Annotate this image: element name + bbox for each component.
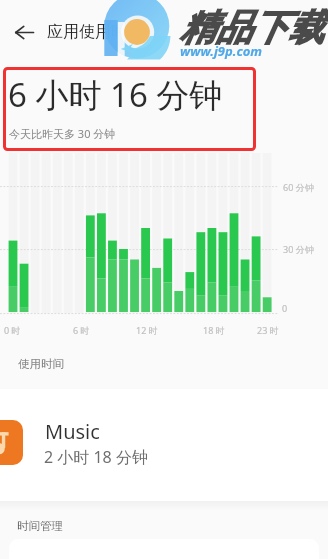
staticText: 应用使用时间: [47, 22, 143, 42]
staticText: 时间管理: [17, 519, 63, 533]
staticText: 2 小时 18 分钟: [44, 446, 148, 468]
staticText: 23 时: [257, 324, 279, 336]
staticText: 18 时: [203, 324, 225, 336]
button[interactable]: Music: [0, 389, 328, 501]
staticText: 今天比昨天多 30 分钟: [9, 126, 116, 141]
staticText: 0 时: [4, 324, 21, 336]
staticText: 12 时: [136, 324, 158, 336]
staticText: www.j9p.com: [180, 42, 263, 60]
staticText: 精品下载: [180, 5, 324, 50]
staticText: 6 时: [73, 324, 90, 336]
staticText: 6 小时 16 分钟: [8, 72, 223, 117]
staticText: 30 分钟: [283, 243, 314, 255]
staticText: 0: [282, 302, 288, 314]
staticText: 60 分钟: [283, 181, 314, 193]
staticText: 使用时间: [18, 357, 64, 371]
button[interactable]: Back: [2, 10, 46, 54]
staticText: Music: [45, 418, 100, 445]
